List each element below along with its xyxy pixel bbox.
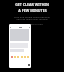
staticText: GET CLEAR WITHIN	[15, 2, 49, 7]
staticText: Get started for free	[21, 22, 43, 25]
staticText: With one simple structured plan you can …	[14, 15, 50, 21]
staticText: A FEW MINUTES	[18, 8, 47, 13]
